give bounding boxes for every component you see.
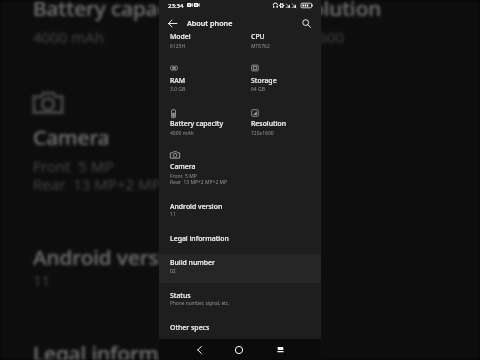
staticText: Resolution — [276, 0, 384, 22]
button[interactable]: Back — [187, 339, 211, 360]
staticText: Rear 13 MP+2 MP+2 MP — [170, 179, 228, 186]
staticText: 02 — [170, 268, 176, 275]
staticText: Resolution — [251, 119, 287, 128]
staticText: 720x1600 — [276, 28, 345, 49]
button[interactable]: Recent apps — [268, 339, 292, 360]
staticText: Android version — [33, 244, 192, 271]
staticText: Phone number, signal, etc. — [170, 300, 230, 307]
staticText: Camera — [33, 124, 111, 151]
button[interactable] — [159, 282, 321, 310]
staticText: Storage — [251, 76, 277, 85]
staticText: 3.0 GB — [170, 86, 186, 93]
staticText: 23:34 — [168, 2, 184, 10]
button[interactable] — [159, 194, 321, 222]
staticText: CPU — [251, 32, 265, 41]
staticText: 11 — [170, 211, 176, 218]
button[interactable]: Home — [227, 339, 251, 360]
staticText: Android version — [170, 202, 223, 211]
staticText: Front 5 MP — [33, 157, 114, 178]
button[interactable] — [0, 220, 480, 304]
button[interactable] — [159, 254, 321, 283]
staticText: Battery capacity — [33, 0, 195, 22]
staticText: Camera — [170, 162, 196, 171]
staticText: Battery capacity — [170, 119, 224, 128]
button[interactable] — [0, 313, 480, 360]
staticText: Legal information — [170, 234, 229, 243]
button[interactable]: Search — [298, 15, 314, 31]
staticText: Front 5 MP — [170, 173, 197, 180]
staticText: 720x1600 — [251, 130, 274, 137]
staticText: Other specs — [170, 323, 210, 332]
staticText: Build number — [170, 258, 215, 267]
staticText: 6125H — [170, 43, 186, 50]
button[interactable] — [159, 225, 321, 249]
staticText: Model — [170, 32, 191, 41]
staticText: MT6762 — [251, 43, 270, 50]
staticText: Rear 13 MP+2 MP+2 MP — [33, 175, 207, 196]
staticText: 4000 mAh — [33, 28, 105, 49]
button[interactable]: Back — [164, 15, 180, 31]
staticText: 11 — [33, 271, 51, 292]
staticText: Status — [170, 291, 191, 300]
staticText: Legal information — [33, 340, 210, 360]
staticText: RAM — [170, 76, 186, 85]
staticText: 4000 mAh — [170, 130, 194, 137]
staticText: About phone — [187, 18, 233, 28]
staticText: 64 GB — [251, 86, 265, 93]
button[interactable] — [159, 314, 321, 337]
